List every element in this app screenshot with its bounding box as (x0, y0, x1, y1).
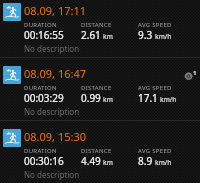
staticText: DISTANCE (81, 84, 112, 92)
button[interactable]: 08.09, 15:30 (0, 126, 200, 183)
staticText: DISTANCE (81, 21, 112, 29)
staticText: 0.99 (81, 91, 101, 105)
staticText: 08.09, 17:11 (24, 3, 87, 18)
button[interactable]: 08.09, 16:47 (0, 63, 200, 126)
staticText: 00:16:55 (24, 28, 64, 42)
staticText: 4.49 (81, 154, 101, 168)
staticText: km/h (160, 95, 177, 104)
staticText: 9.3 (138, 28, 153, 42)
staticText: km (103, 158, 113, 167)
staticText: km (103, 32, 113, 41)
staticText: 1 (193, 69, 197, 77)
staticText: 17.1 (138, 91, 158, 105)
staticText: km/h (155, 32, 172, 41)
staticText: AVG SPEED (138, 84, 172, 92)
staticText: DISTANCE (81, 147, 112, 155)
staticText: 08.09, 15:30 (24, 129, 87, 144)
button[interactable]: Show track on map (184, 69, 198, 81)
staticText: 00:03:29 (24, 91, 64, 105)
staticText: km (103, 95, 113, 104)
staticText: No description (24, 43, 80, 54)
staticText: AVG SPEED (138, 21, 172, 29)
button[interactable]: 08.09, 17:11 (0, 0, 200, 63)
staticText: 00:30:16 (24, 154, 64, 168)
staticText: AVG SPEED (138, 147, 172, 155)
staticText: DURATION (24, 21, 57, 29)
staticText: DURATION (24, 147, 57, 155)
staticText: DURATION (24, 84, 57, 92)
staticText: 2.61 (81, 28, 101, 42)
staticText: 08.09, 16:47 (24, 66, 87, 81)
staticText: km/h (155, 158, 172, 167)
staticText: No description (24, 106, 80, 117)
staticText: No description (24, 169, 80, 180)
staticText: 8.9 (138, 154, 153, 168)
